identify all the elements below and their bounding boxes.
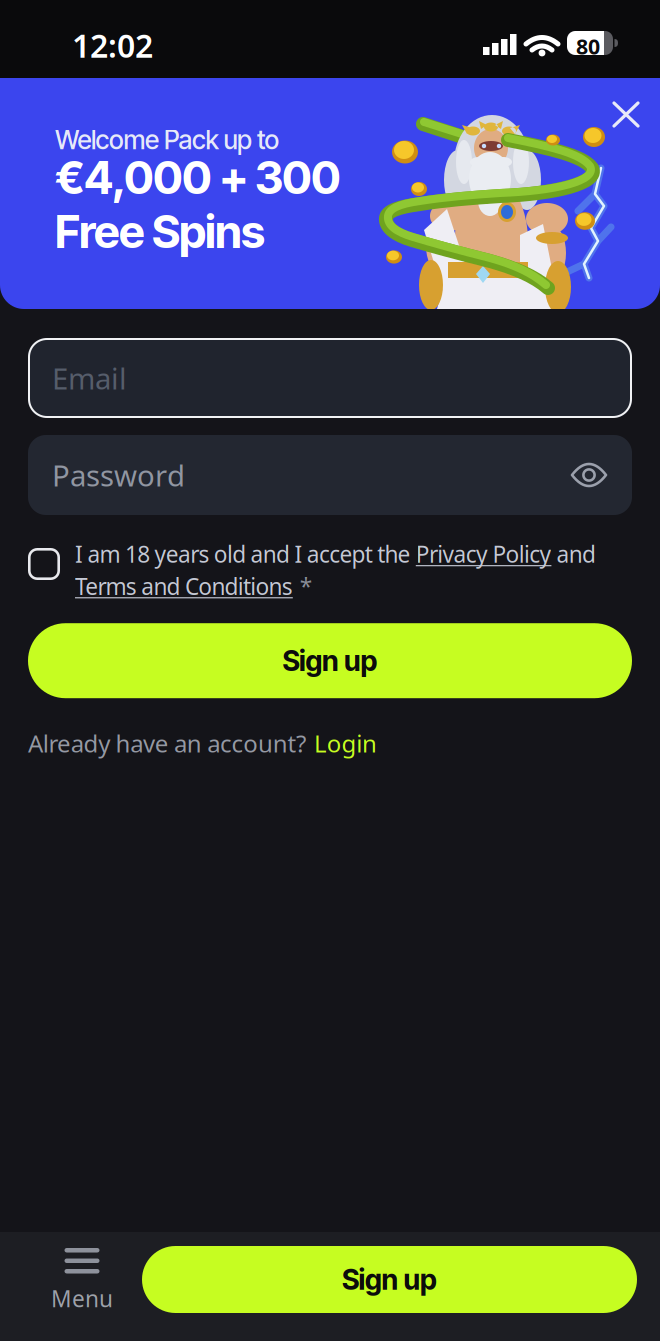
button[interactable]: Close [610,99,642,130]
staticText: 12:02 [72,24,153,66]
staticText: * [300,571,312,601]
staticText: Welcome Pack up to [55,124,279,155]
staticText: Privacy Policy [416,539,551,569]
button[interactable]: Login [314,727,377,759]
staticText: Menu [51,1283,113,1314]
staticText: Email [52,358,127,397]
button[interactable]: I am 18 years old and I accept the Priva… [28,548,60,580]
staticText: 80 [576,32,600,60]
staticText: I am 18 years old and I accept the [75,539,416,569]
staticText: Login [314,727,377,759]
button[interactable]: Menu [51,1248,113,1314]
staticText: Sign up [342,1263,437,1296]
staticText: and [551,539,596,569]
staticText: Free Spins [55,204,265,259]
button[interactable]: Show password [570,461,608,489]
staticText: Password [52,455,185,494]
staticText: Terms and Conditions [75,571,293,601]
button[interactable]: Sign up [28,623,632,698]
button[interactable]: Privacy Policy [416,539,551,569]
staticText: €4,000 + 300 [55,150,341,205]
button[interactable]: Terms and Conditions [75,571,293,601]
button[interactable]: Sign up [142,1246,637,1313]
staticText: Already have an account? [28,727,306,759]
staticText: Sign up [282,644,377,678]
